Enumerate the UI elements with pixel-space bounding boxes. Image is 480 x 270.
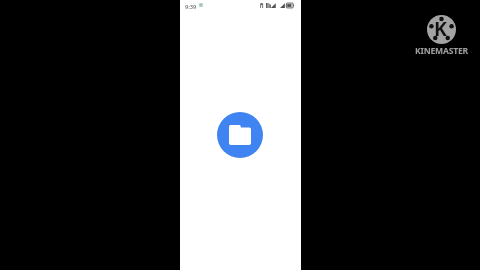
staticText: 9:39 bbox=[185, 3, 197, 11]
staticText: K bbox=[434, 15, 447, 42]
staticText: KINEMASTER bbox=[415, 45, 469, 57]
button[interactable]: Files bbox=[217, 112, 263, 158]
